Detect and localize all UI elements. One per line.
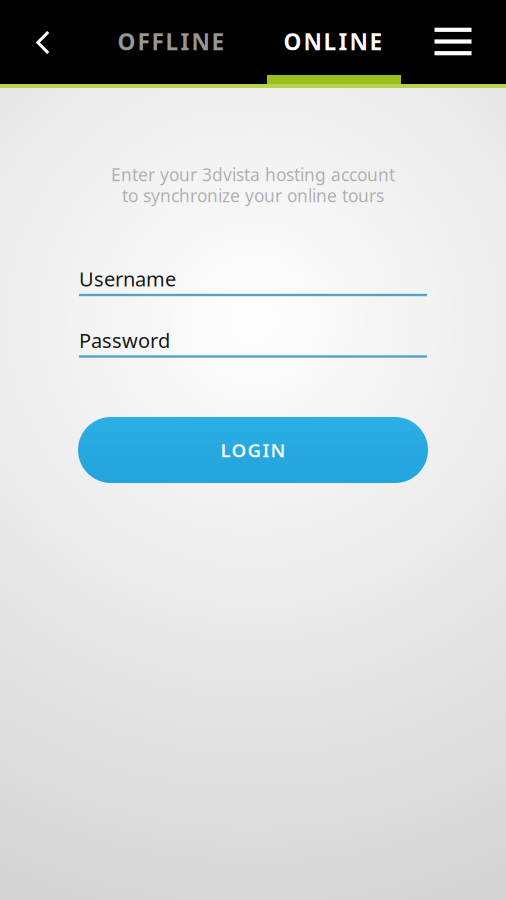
button[interactable]: Username <box>79 264 427 296</box>
staticText: Enter your 3dvista hosting account <box>111 163 395 186</box>
button[interactable]: Menu <box>416 0 490 83</box>
button[interactable]: ONLINE <box>253 0 413 83</box>
staticText: OFFLINE <box>117 26 224 56</box>
staticText: ONLINE <box>283 26 382 56</box>
button[interactable]: Password <box>79 325 427 358</box>
button[interactable]: Back <box>6 1 80 84</box>
staticText: Username <box>79 265 176 292</box>
staticText: to synchronize your online tours <box>122 184 384 207</box>
staticText: Password <box>79 327 170 354</box>
button[interactable]: OFFLINE <box>81 0 261 83</box>
button[interactable]: LOGIN <box>78 417 428 483</box>
staticText: LOGIN <box>220 438 285 462</box>
